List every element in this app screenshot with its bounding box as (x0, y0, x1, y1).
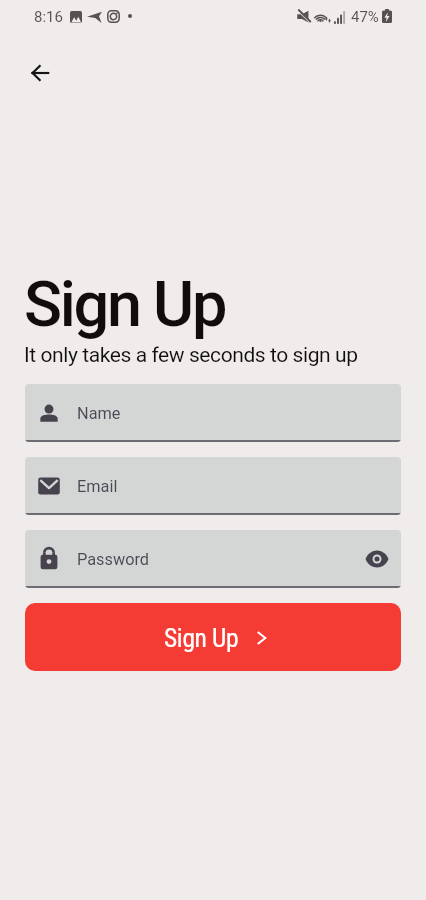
staticText: Name (77, 404, 121, 423)
staticText: 8:16 (34, 8, 63, 26)
staticText: Email (77, 477, 118, 496)
button[interactable]: Email (25, 457, 401, 515)
staticText: Sign Up (164, 623, 239, 653)
button[interactable]: Back (24, 58, 54, 88)
staticText: Password (77, 550, 149, 569)
staticText: It only takes a few seconds to sign up (24, 343, 358, 368)
button[interactable]: Name (25, 384, 401, 442)
staticText: Sign Up (24, 268, 226, 342)
button[interactable]: Show password (362, 544, 392, 574)
staticText: 47% (351, 8, 379, 26)
button[interactable]: Sign Up (25, 603, 401, 671)
button[interactable]: Password (25, 530, 401, 588)
